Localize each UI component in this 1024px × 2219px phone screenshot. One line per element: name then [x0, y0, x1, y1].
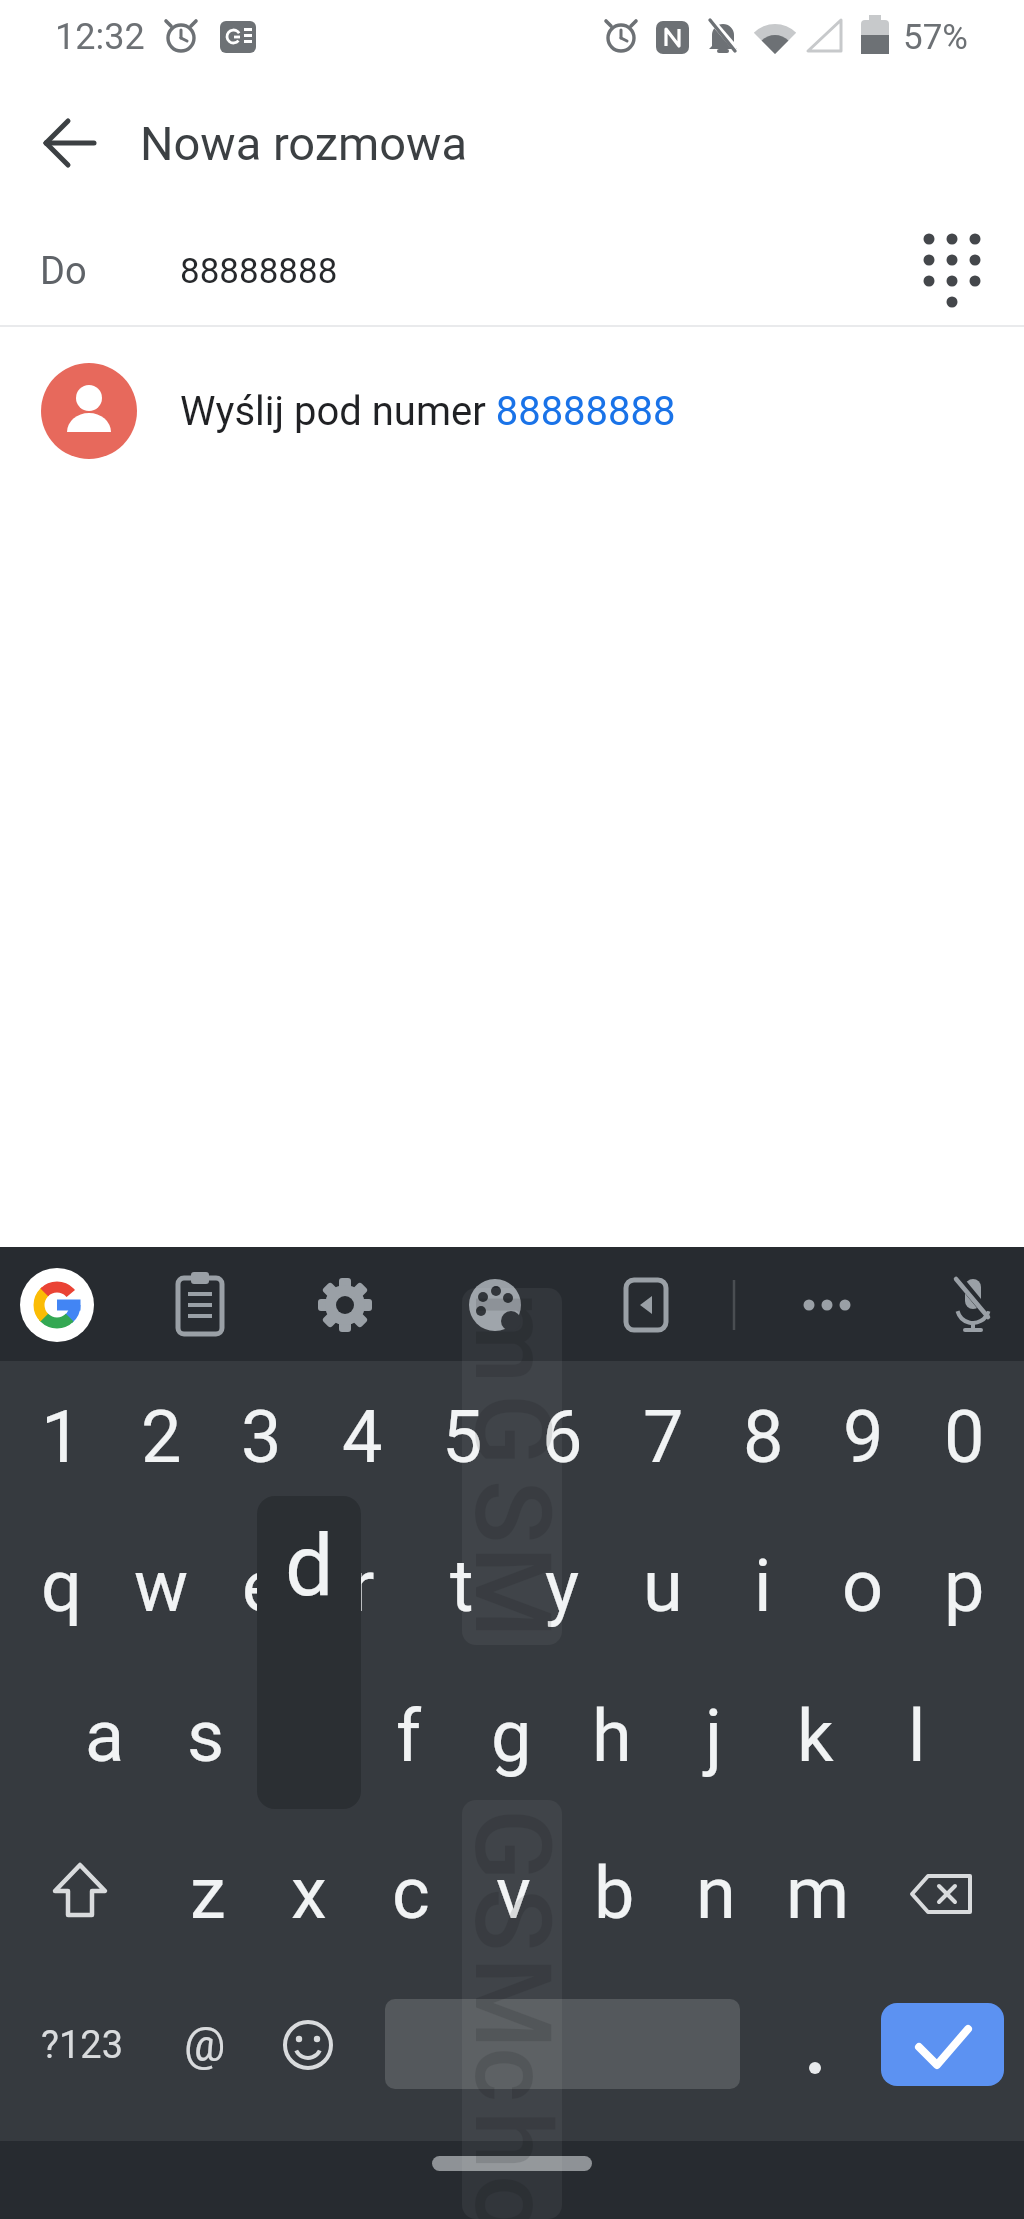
button[interactable]	[782, 1258, 872, 1352]
button[interactable]: k	[765, 1662, 865, 1810]
staticText: m	[786, 1851, 850, 1935]
staticText: k	[797, 1694, 834, 1778]
button[interactable]: l	[867, 1662, 967, 1810]
button[interactable]: t	[412, 1512, 512, 1660]
staticText: 5	[442, 1395, 483, 1479]
staticText: j	[705, 1694, 723, 1778]
button[interactable]: i	[713, 1512, 813, 1660]
staticText: 1	[41, 1395, 82, 1479]
staticText: 57%	[903, 17, 968, 58]
button[interactable]: h	[562, 1662, 662, 1810]
button[interactable]: 0	[914, 1363, 1014, 1511]
button[interactable]: r	[312, 1512, 412, 1660]
button[interactable]	[300, 1258, 390, 1352]
button[interactable]: q	[11, 1512, 111, 1660]
button[interactable]: o	[813, 1512, 913, 1660]
staticText: e	[242, 1544, 281, 1628]
button[interactable]: 9	[813, 1363, 913, 1511]
staticText: l	[908, 1694, 926, 1778]
button[interactable]: n	[666, 1819, 766, 1967]
button[interactable]	[881, 2003, 1004, 2086]
button[interactable]	[30, 103, 110, 183]
button[interactable]: j	[664, 1662, 764, 1810]
staticText: 9	[843, 1395, 884, 1479]
button[interactable]: m	[768, 1819, 868, 1967]
staticText: z	[190, 1851, 226, 1935]
staticText: G	[450, 1394, 573, 1466]
staticText: Nowa rozmowa	[140, 116, 468, 171]
staticText: c	[450, 2047, 573, 2103]
button[interactable]	[450, 1258, 540, 1352]
staticText: M	[450, 1546, 573, 1638]
staticText: 2	[141, 1395, 182, 1479]
staticText: x	[291, 1851, 327, 1935]
staticText: u	[643, 1544, 683, 1628]
button[interactable]: 5	[412, 1363, 512, 1511]
button[interactable]: u	[613, 1512, 713, 1660]
staticText: ?123	[41, 2023, 124, 2068]
button[interactable]: v	[463, 1819, 563, 1967]
button[interactable]	[892, 1843, 992, 1943]
staticText: 0	[944, 1395, 985, 1479]
staticText: G	[450, 1809, 573, 1881]
button[interactable]: y	[512, 1512, 612, 1660]
staticText: a	[85, 1694, 125, 1778]
button[interactable]: e	[211, 1512, 311, 1660]
button[interactable]: z	[158, 1819, 258, 1967]
staticText: S	[450, 1888, 573, 1952]
button[interactable]	[905, 225, 1000, 320]
button[interactable]: 7	[613, 1363, 713, 1511]
staticText: M	[450, 1957, 573, 2049]
staticText: h	[592, 1694, 632, 1778]
staticText: t	[450, 1544, 474, 1628]
staticText: 88888888	[180, 251, 338, 292]
button[interactable]: c	[361, 1819, 461, 1967]
staticText: q	[41, 1544, 82, 1628]
staticText: o	[450, 2175, 573, 2219]
button[interactable]: Wyślij pod numer 88888888	[0, 327, 1024, 495]
button[interactable]: 3	[211, 1363, 311, 1511]
button[interactable]: 4	[312, 1363, 412, 1511]
staticText: h	[450, 2111, 573, 2170]
button[interactable]: x	[259, 1819, 359, 1967]
button[interactable]: 6	[512, 1363, 612, 1511]
staticText: s	[187, 1694, 225, 1778]
button[interactable]: @	[155, 1971, 255, 2119]
staticText: o	[842, 1544, 884, 1628]
button[interactable]: 8	[713, 1363, 813, 1511]
button[interactable]: f	[359, 1662, 459, 1810]
button[interactable]: ?123	[32, 1971, 132, 2119]
button[interactable]: b	[564, 1819, 664, 1967]
button[interactable]: 1	[11, 1363, 111, 1511]
staticText: b	[594, 1851, 635, 1935]
button[interactable]	[258, 1995, 358, 2095]
staticText: g	[491, 1694, 532, 1778]
staticText: f	[396, 1694, 422, 1778]
button[interactable]	[30, 1843, 130, 1943]
button[interactable]: 2	[111, 1363, 211, 1511]
staticText: p	[944, 1544, 985, 1628]
staticText: 7	[643, 1395, 684, 1479]
staticText: 12:32	[55, 16, 145, 58]
button[interactable]	[928, 1258, 1018, 1352]
button[interactable]: w	[111, 1512, 211, 1660]
staticText: n	[696, 1851, 736, 1935]
staticText: Wyślij pod numer 88888888	[180, 388, 676, 435]
staticText: d	[285, 1515, 334, 1616]
staticText: w	[134, 1544, 189, 1628]
button[interactable]	[385, 1999, 740, 2089]
staticText: v	[496, 1851, 531, 1935]
staticText: 4	[342, 1395, 383, 1479]
button[interactable]	[20, 1268, 94, 1342]
button[interactable]: p	[914, 1512, 1014, 1660]
staticText: y	[545, 1544, 580, 1628]
button[interactable]: g	[461, 1662, 561, 1810]
staticText: c	[392, 1851, 430, 1935]
button[interactable]: a	[55, 1662, 155, 1810]
staticText: Do	[40, 249, 87, 294]
button[interactable]: s	[156, 1662, 256, 1810]
button[interactable]	[600, 1258, 690, 1352]
button[interactable]	[150, 1258, 240, 1352]
